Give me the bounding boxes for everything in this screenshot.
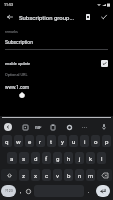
button[interactable]: t (47, 135, 56, 147)
staticText: c (45, 172, 49, 179)
staticText: k (89, 155, 93, 162)
button[interactable]: m (86, 169, 95, 181)
staticText: a (10, 155, 14, 162)
button[interactable]: Backspace (97, 169, 112, 181)
staticText: y (61, 138, 64, 145)
button[interactable]: e (25, 135, 34, 147)
button[interactable]: c (42, 169, 51, 181)
button[interactable]: Voice input (99, 122, 109, 132)
button[interactable]: w (14, 135, 23, 147)
staticText: h (67, 155, 71, 162)
staticText: w (16, 138, 21, 145)
staticText: o (94, 138, 98, 145)
staticText: r (39, 138, 42, 145)
button[interactable]: GIF (33, 122, 43, 132)
staticText: u (72, 138, 76, 145)
button[interactable]: Comma (17, 185, 23, 197)
button[interactable]: a (7, 152, 17, 164)
button[interactable]: o (91, 135, 100, 147)
staticText: j (79, 155, 81, 162)
staticText: ?123 (5, 189, 13, 193)
button[interactable]: z (19, 169, 29, 181)
button[interactable]: i (80, 135, 89, 147)
button[interactable]: b (64, 169, 73, 181)
staticText: b (67, 172, 71, 179)
button[interactable]: u (69, 135, 78, 147)
button[interactable]: Settings (64, 122, 74, 132)
staticText: x (34, 172, 38, 179)
button[interactable]: l (97, 152, 106, 164)
staticText: Subscription group... (19, 14, 75, 21)
staticText: www.1.com (5, 85, 30, 90)
button[interactable]: p (102, 135, 111, 147)
button[interactable]: enable update (5, 58, 108, 69)
button[interactable]: More options (79, 122, 89, 132)
button[interactable]: f (42, 152, 51, 164)
button[interactable]: Shift (1, 169, 17, 181)
staticText: . (88, 188, 90, 194)
staticText: , (20, 188, 21, 194)
button[interactable]: n (75, 169, 84, 181)
staticText: m (88, 172, 94, 179)
button[interactable]: y (58, 135, 67, 147)
staticText: s (22, 155, 26, 162)
button[interactable]: ?123 (1, 185, 16, 197)
button[interactable]: Expand toolbar (3, 122, 13, 132)
staticText: t (50, 138, 53, 145)
staticText: d (34, 155, 38, 162)
staticText: z (22, 172, 26, 179)
staticText: 11:53 (4, 3, 13, 7)
staticText: f (45, 155, 48, 162)
button[interactable]: r (36, 135, 45, 147)
staticText: Optional URL (5, 72, 28, 77)
staticText: e (28, 138, 32, 145)
staticText: GIF (35, 125, 42, 130)
staticText: i (84, 138, 86, 145)
button[interactable]: Enter (93, 185, 113, 197)
button[interactable]: Emoji (23, 185, 33, 197)
button[interactable]: h (64, 152, 73, 164)
staticText: enable update (5, 61, 101, 66)
button[interactable]: v (53, 169, 62, 181)
button[interactable]: Clipboard (48, 122, 58, 132)
button[interactable]: s (19, 152, 29, 164)
button[interactable]: Confirm (98, 11, 110, 23)
staticText: remarks (5, 30, 18, 34)
button[interactable]: Stickers (20, 122, 30, 132)
staticText: n (78, 172, 82, 179)
staticText: v (56, 172, 59, 179)
staticText: p (105, 138, 109, 145)
button[interactable]: q (2, 135, 12, 147)
staticText: q (5, 138, 9, 145)
button[interactable]: Back (3, 10, 16, 23)
button[interactable]: j (75, 152, 84, 164)
button[interactable]: g (53, 152, 62, 164)
button[interactable]: k (86, 152, 95, 164)
staticText: g (56, 155, 60, 162)
staticText: Subscription (5, 39, 33, 45)
button[interactable]: d (31, 152, 40, 164)
button[interactable]: Period (85, 185, 93, 197)
button[interactable]: Save (82, 11, 94, 23)
button[interactable]: x (31, 169, 40, 181)
staticText: l (101, 155, 103, 162)
